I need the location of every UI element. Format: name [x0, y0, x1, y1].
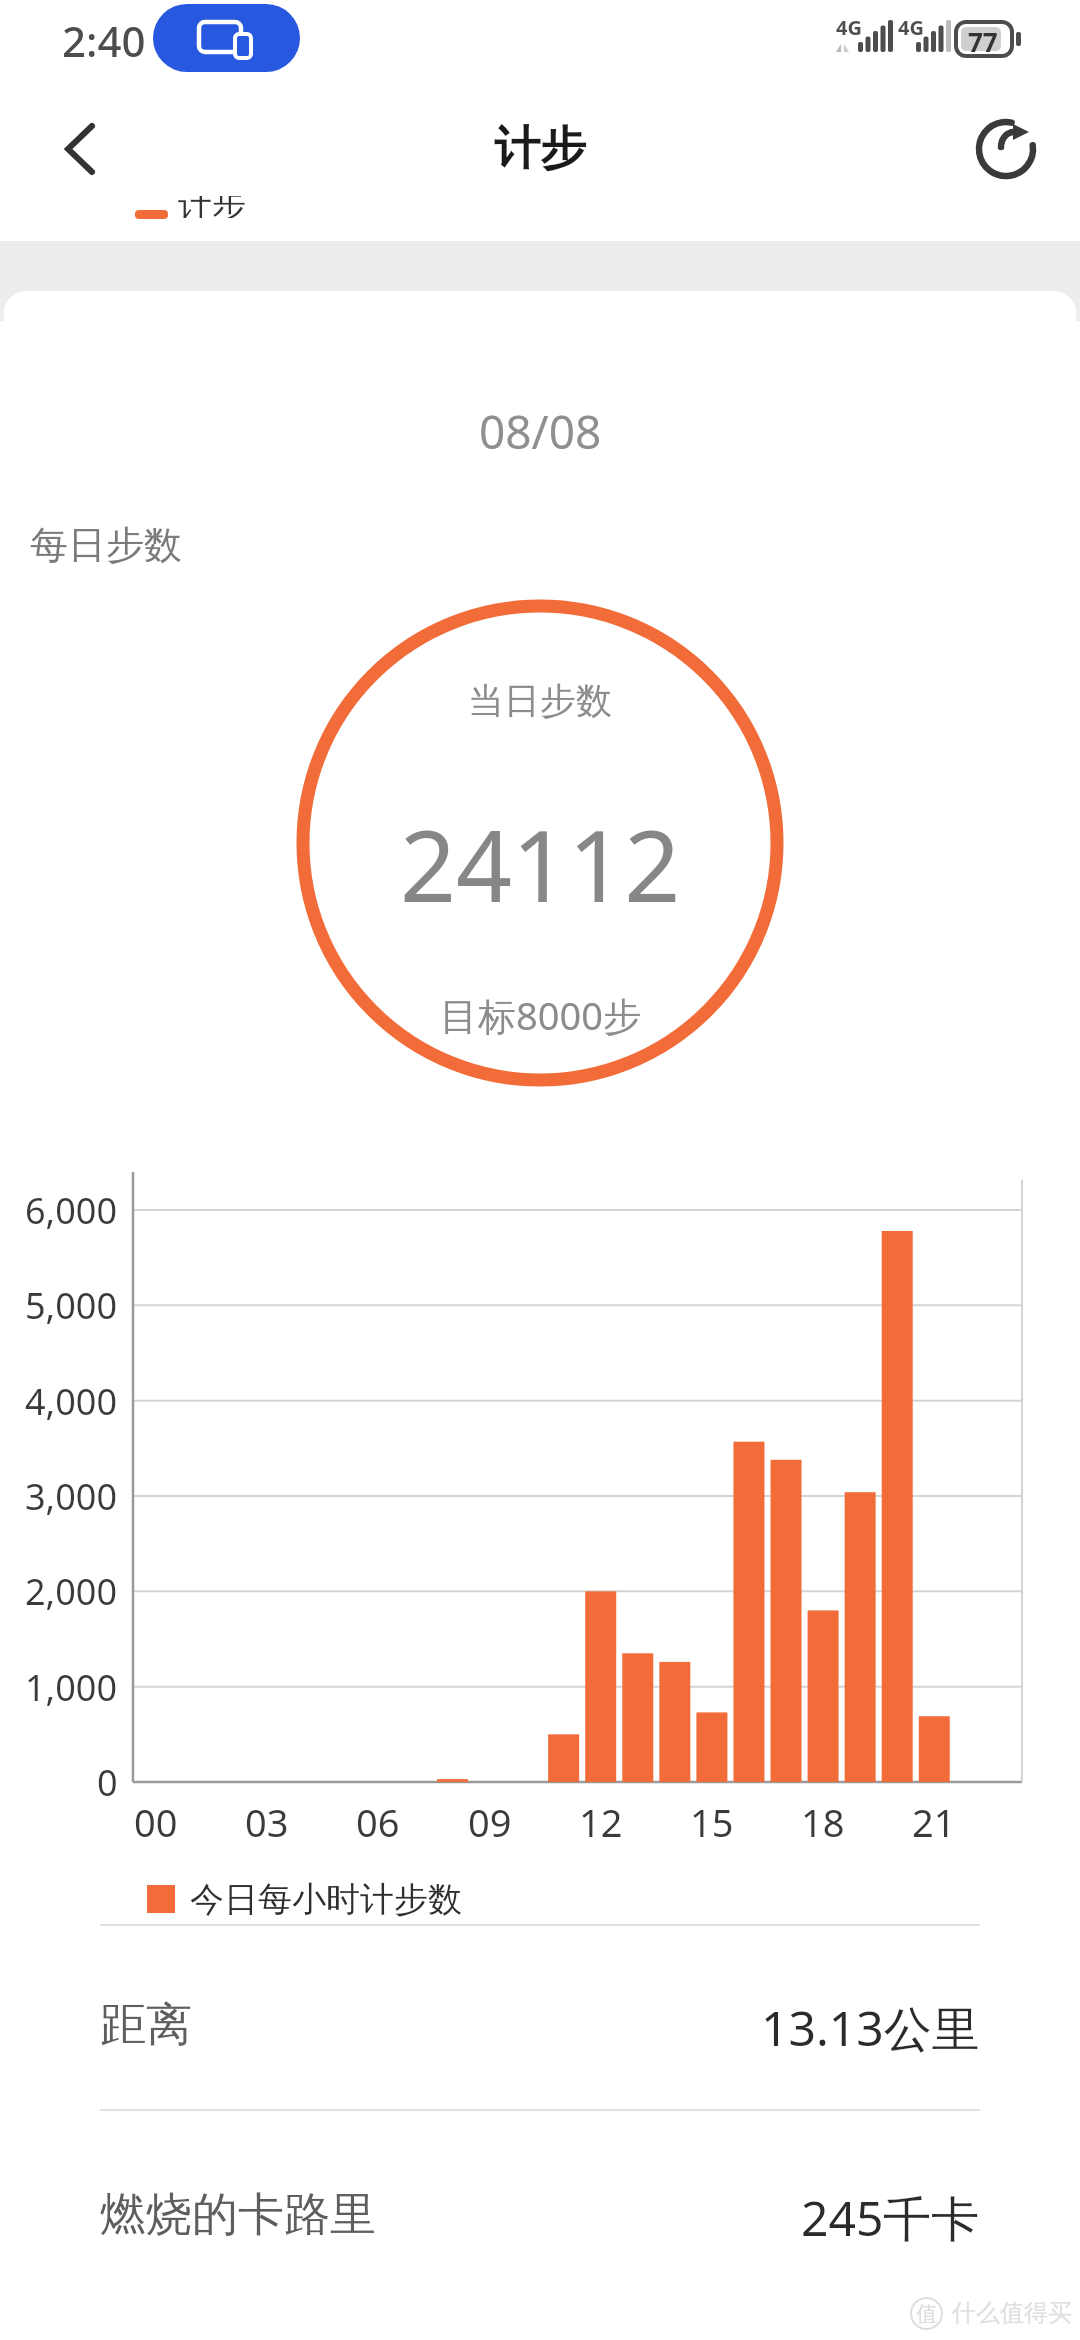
- button[interactable]: [966, 117, 1046, 181]
- staticText: 每日步数: [30, 521, 182, 569]
- staticText: 08/08: [479, 400, 602, 460]
- staticText: 12: [579, 1796, 623, 1848]
- staticText: 5,000: [25, 1281, 118, 1330]
- staticText: 21: [912, 1796, 956, 1848]
- staticText: 值: [916, 2301, 937, 2327]
- staticText: 06: [356, 1796, 400, 1848]
- staticText: 15: [690, 1796, 734, 1848]
- button[interactable]: 距离: [100, 1995, 980, 2055]
- staticText: 245千卡: [801, 2185, 980, 2245]
- button[interactable]: [40, 117, 120, 181]
- staticText: 计步: [178, 196, 246, 218]
- staticText: 24112: [400, 797, 681, 930]
- staticText: 3,000: [25, 1472, 118, 1521]
- staticText: 09: [468, 1796, 512, 1848]
- staticText: 目标8000步: [440, 989, 641, 1041]
- staticText: 1,000: [25, 1663, 118, 1712]
- staticText: 6,000: [25, 1186, 118, 1235]
- staticText: 4,000: [25, 1377, 118, 1426]
- staticText: 2,000: [25, 1567, 118, 1616]
- staticText: 燃烧的卡路里: [100, 2186, 376, 2244]
- staticText: 77: [968, 24, 998, 59]
- staticText: 18: [801, 1796, 845, 1848]
- staticText: 2:40: [62, 12, 146, 68]
- staticText: 4G: [898, 14, 924, 40]
- staticText: 4G: [836, 14, 862, 40]
- staticText: 00: [134, 1796, 178, 1848]
- staticText: 今日每小时计步数: [190, 1878, 462, 1921]
- staticText: 当日步数: [468, 678, 612, 723]
- button[interactable]: 燃烧的卡路里: [100, 2185, 980, 2245]
- button[interactable]: [153, 4, 300, 72]
- staticText: 什么值得买: [952, 2298, 1072, 2328]
- staticText: 13.13公里: [761, 1995, 980, 2055]
- staticText: 距离: [100, 1996, 192, 2054]
- staticText: 计步: [494, 120, 586, 178]
- staticText: 03: [245, 1796, 289, 1848]
- staticText: 0: [97, 1758, 118, 1807]
